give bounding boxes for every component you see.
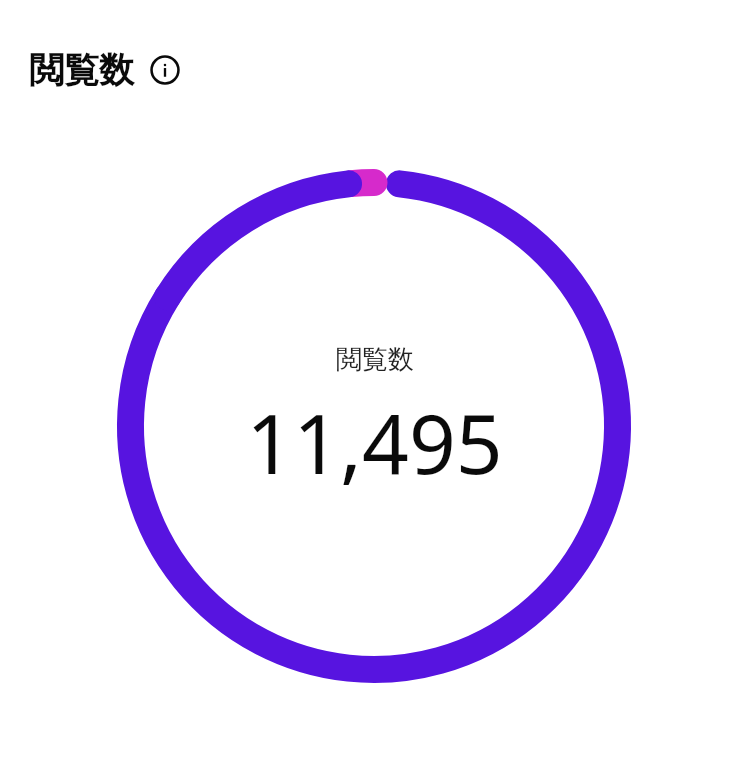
button[interactable]: 閲覧数 [117,169,631,683]
button[interactable]: 情報 [148,53,182,87]
staticText: 11,495 [246,386,503,498]
staticText: 閲覧数 [336,343,414,376]
staticText: 閲覧数 [29,48,134,92]
